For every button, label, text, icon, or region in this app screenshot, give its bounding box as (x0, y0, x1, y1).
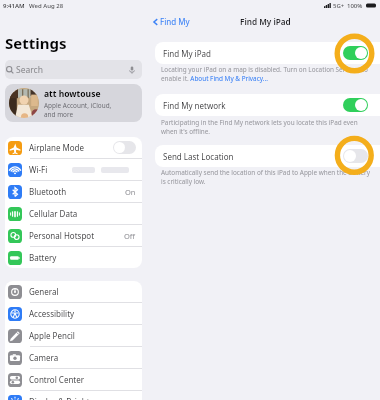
staticText: Find My iPad (163, 48, 211, 59)
staticText: Find My (160, 16, 190, 27)
staticText: Locating your iPad on a map is disabled.… (161, 65, 368, 82)
button[interactable]: Turn off (343, 46, 368, 60)
staticText: Wi-Fi (29, 164, 48, 175)
button[interactable]: Camera (5, 347, 142, 368)
staticText: Apple Pencil (29, 330, 75, 341)
button[interactable]: Accessibility (5, 303, 142, 324)
button[interactable]: Turn on (343, 149, 368, 163)
staticText: Off (124, 231, 136, 241)
staticText: Participating in the Find My network let… (161, 118, 358, 135)
button[interactable]: Bluetooth (5, 181, 142, 202)
button[interactable]: Display & Brightness (5, 391, 142, 400)
staticText: Camera (29, 352, 59, 363)
staticText: 9:41AM (3, 2, 25, 10)
staticText: Airplane Mode (29, 142, 85, 153)
button[interactable]: Find My iPad (155, 42, 380, 64)
staticText: 5G+ (333, 2, 345, 10)
button[interactable]: Control Center (5, 369, 142, 390)
staticText: On (125, 187, 136, 197)
button[interactable]: Turn on (113, 141, 136, 154)
button[interactable]: Apple Pencil (5, 325, 142, 346)
staticText: Accessibility (29, 308, 75, 319)
button[interactable]: General (5, 281, 142, 302)
button[interactable]: Find My (151, 14, 192, 29)
button[interactable]: Airplane Mode (5, 137, 142, 158)
button[interactable]: att howtouse (5, 84, 142, 122)
staticText: Settings (5, 33, 67, 53)
staticText: Battery (29, 252, 57, 263)
staticText: Control Center (29, 374, 85, 385)
staticText: Automatically send the location of this … (161, 168, 371, 185)
staticText: Display & Brightness (29, 396, 107, 400)
button[interactable]: Turn off (343, 98, 368, 112)
staticText: Apple Account, iCloud, and more (44, 101, 112, 118)
staticText: Find My iPad (240, 16, 291, 27)
staticText: Wed Aug 28 (29, 2, 64, 10)
button[interactable]: Wi-Fi (5, 159, 142, 180)
staticText: Personal Hotspot (29, 230, 95, 241)
staticText: Send Last Location (163, 151, 234, 162)
button[interactable]: Search (5, 60, 142, 79)
staticText: General (29, 286, 59, 297)
staticText: Bluetooth (29, 186, 67, 197)
button[interactable]: Cellular Data (5, 203, 142, 224)
staticText: 100% (347, 2, 363, 10)
staticText: Cellular Data (29, 208, 78, 219)
button[interactable]: Send Last Location (155, 145, 380, 167)
staticText: att howtouse (44, 88, 101, 100)
staticText: Search (16, 64, 43, 76)
button[interactable]: Battery (5, 247, 142, 268)
button[interactable]: Personal Hotspot (5, 225, 142, 246)
button[interactable]: Find My network (155, 94, 380, 116)
staticText: Find My network (163, 100, 226, 111)
